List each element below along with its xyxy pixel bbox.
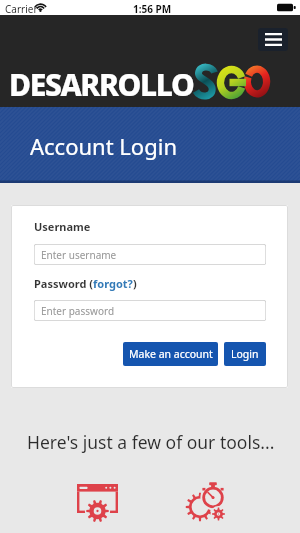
button[interactable]: Enter password [34,300,266,321]
staticText: Here's just a few of our tools... [27,430,275,454]
staticText: Password ( [34,276,93,291]
staticText: Login [231,347,259,361]
button[interactable]: forgot? [93,276,133,291]
staticText: Make an account [129,347,213,361]
button[interactable]: Make an account [123,342,218,366]
staticText: DESARROLLO [9,64,194,105]
staticText: 1:56 PM [133,2,172,16]
staticText: forgot? [93,276,133,291]
staticText: Account Login [30,131,177,161]
staticText: Enter username [41,248,117,262]
staticText: ) [133,276,137,291]
button[interactable]: Menu [258,28,288,51]
button[interactable]: Enter username [34,244,266,265]
staticText: Enter password [41,304,115,318]
staticText: Username [34,219,91,234]
button[interactable]: Login [224,342,266,366]
staticText: Carrier [5,2,38,16]
